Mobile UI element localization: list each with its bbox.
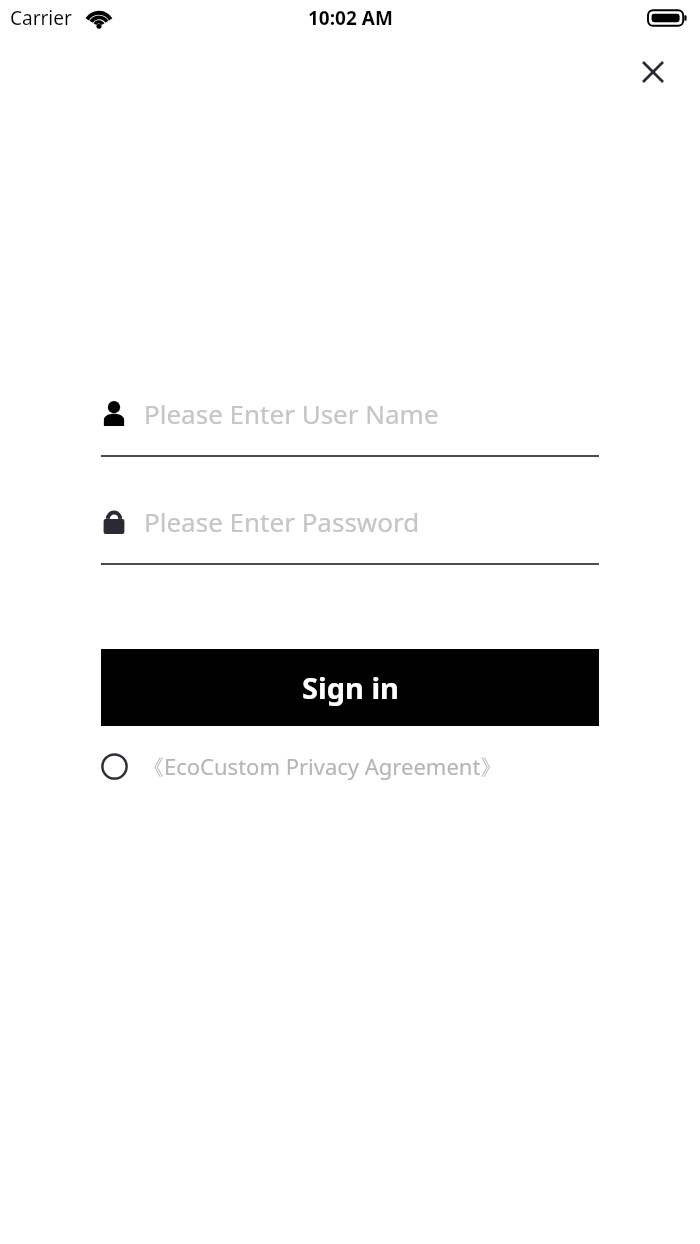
staticText: Sign in [302, 668, 399, 707]
staticText: Please Enter Password [144, 504, 420, 539]
staticText: Carrier [10, 5, 72, 31]
button[interactable]: 《EcoCustom Privacy Agreement》 [101, 745, 599, 787]
button[interactable]: Sign in [101, 649, 599, 726]
button[interactable]: Please Enter Password [101, 493, 599, 565]
staticText: Please Enter User Name [144, 396, 439, 431]
button[interactable]: Close [628, 47, 677, 96]
staticText: 《EcoCustom Privacy Agreement》 [142, 751, 503, 781]
button[interactable]: Please Enter User Name [101, 385, 599, 457]
staticText: 10:02 AM [308, 5, 393, 31]
